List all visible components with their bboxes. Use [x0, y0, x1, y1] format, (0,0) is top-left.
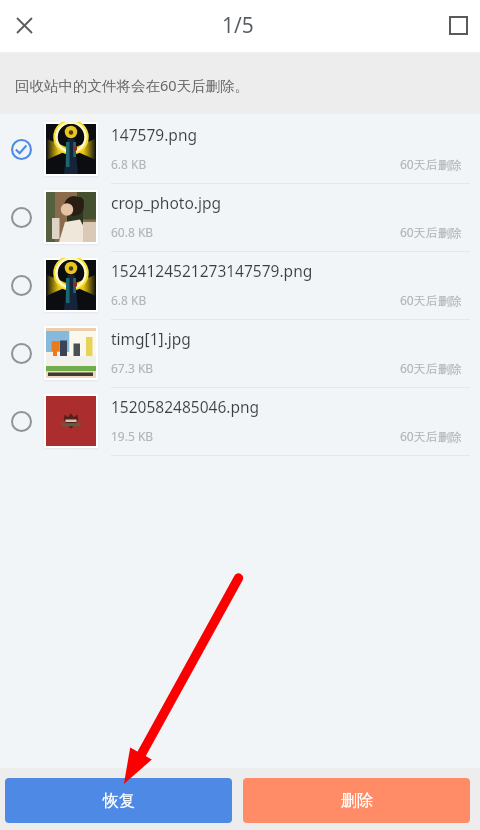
- staticText: 60天后删除: [400, 156, 462, 172]
- staticText: 60.8 KB: [111, 224, 154, 240]
- button[interactable]: Close: [0, 2, 48, 50]
- staticText: timg[1].jpg: [111, 328, 191, 349]
- staticText: 60天后删除: [400, 360, 462, 376]
- button[interactable]: crop_photo.jpg: [0, 184, 480, 252]
- staticText: 恢复: [103, 791, 135, 811]
- staticText: 回收站中的文件将会在60天后删除。: [15, 75, 250, 95]
- staticText: 60天后删除: [400, 428, 462, 444]
- staticText: 1524124521273147579.png: [111, 260, 313, 281]
- staticText: 删除: [341, 791, 373, 811]
- staticText: 6.8 KB: [111, 292, 147, 308]
- staticText: 60天后删除: [400, 292, 462, 308]
- button[interactable]: timg[1].jpg: [0, 320, 480, 388]
- staticText: 147579.png: [111, 124, 197, 145]
- staticText: crop_photo.jpg: [111, 192, 222, 213]
- button[interactable]: 1520582485046.png: [0, 388, 480, 456]
- staticText: 1520582485046.png: [111, 396, 260, 417]
- staticText: 60天后删除: [400, 224, 462, 240]
- staticText: 6.8 KB: [111, 156, 147, 172]
- button[interactable]: Select all: [434, 1, 480, 49]
- button[interactable]: 恢复: [5, 778, 232, 823]
- staticText: 1/5: [222, 11, 254, 40]
- staticText: 67.3 KB: [111, 360, 154, 376]
- staticText: 19.5 KB: [111, 428, 154, 444]
- button[interactable]: 1524124521273147579.png: [0, 252, 480, 320]
- button[interactable]: 删除: [243, 778, 470, 823]
- button[interactable]: 147579.png: [0, 116, 480, 184]
